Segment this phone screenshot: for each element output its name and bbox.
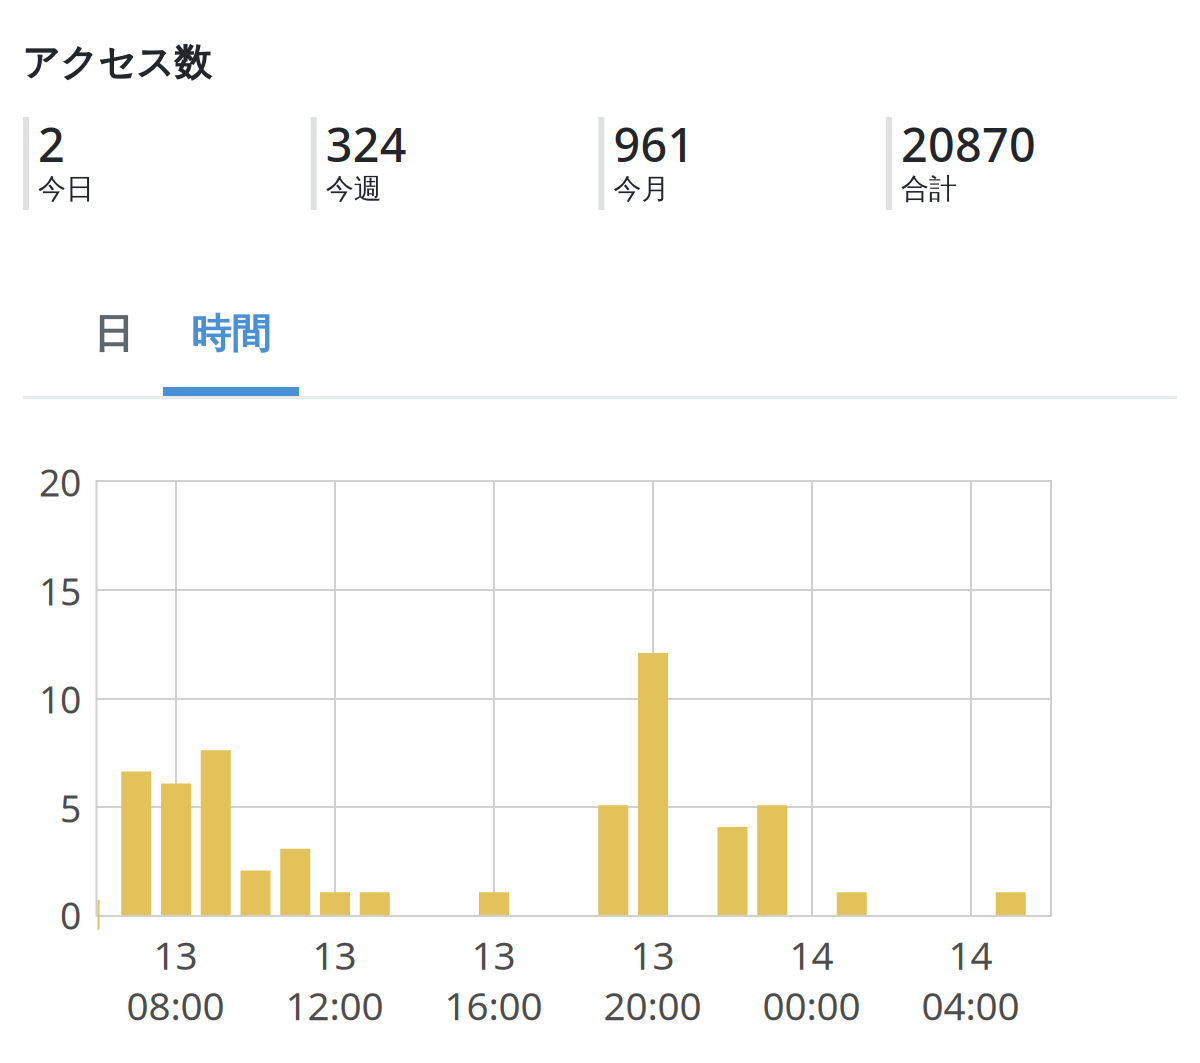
staticText: 04:00 [921, 980, 1019, 1031]
staticText: 324 [326, 113, 407, 175]
staticText: 08:00 [126, 980, 224, 1031]
staticText: 14 [948, 929, 992, 980]
staticText: 日 [93, 309, 133, 358]
staticText: 16:00 [444, 980, 542, 1031]
staticText: 13 [630, 929, 674, 980]
staticText: 20:00 [603, 980, 701, 1031]
staticText: 10 [39, 674, 81, 724]
staticText: 14 [789, 929, 833, 980]
staticText: 13 [312, 929, 356, 980]
staticText: アクセス数 [22, 40, 211, 86]
button[interactable]: 時間 [163, 282, 299, 396]
staticText: 今日 [38, 172, 94, 206]
staticText: 合計 [901, 172, 957, 206]
staticText: 2 [38, 113, 65, 175]
button[interactable]: 961 [598, 117, 886, 210]
staticText: 今月 [613, 172, 669, 206]
button[interactable]: 324 [311, 117, 598, 210]
staticText: 20870 [901, 113, 1036, 175]
button[interactable]: 20870 [886, 117, 1174, 210]
staticText: 5 [60, 783, 81, 833]
staticText: 13 [471, 929, 515, 980]
staticText: 961 [613, 113, 694, 175]
staticText: 0 [60, 890, 81, 940]
button[interactable]: 2 [23, 117, 311, 210]
staticText: 20 [39, 457, 81, 507]
staticText: 時間 [191, 309, 271, 358]
staticText: 15 [39, 566, 81, 616]
staticText: 00:00 [762, 980, 860, 1031]
staticText: 12:00 [285, 980, 383, 1031]
staticText: 今週 [326, 172, 382, 206]
button[interactable]: 日 [64, 282, 163, 396]
staticText: 13 [153, 929, 197, 980]
